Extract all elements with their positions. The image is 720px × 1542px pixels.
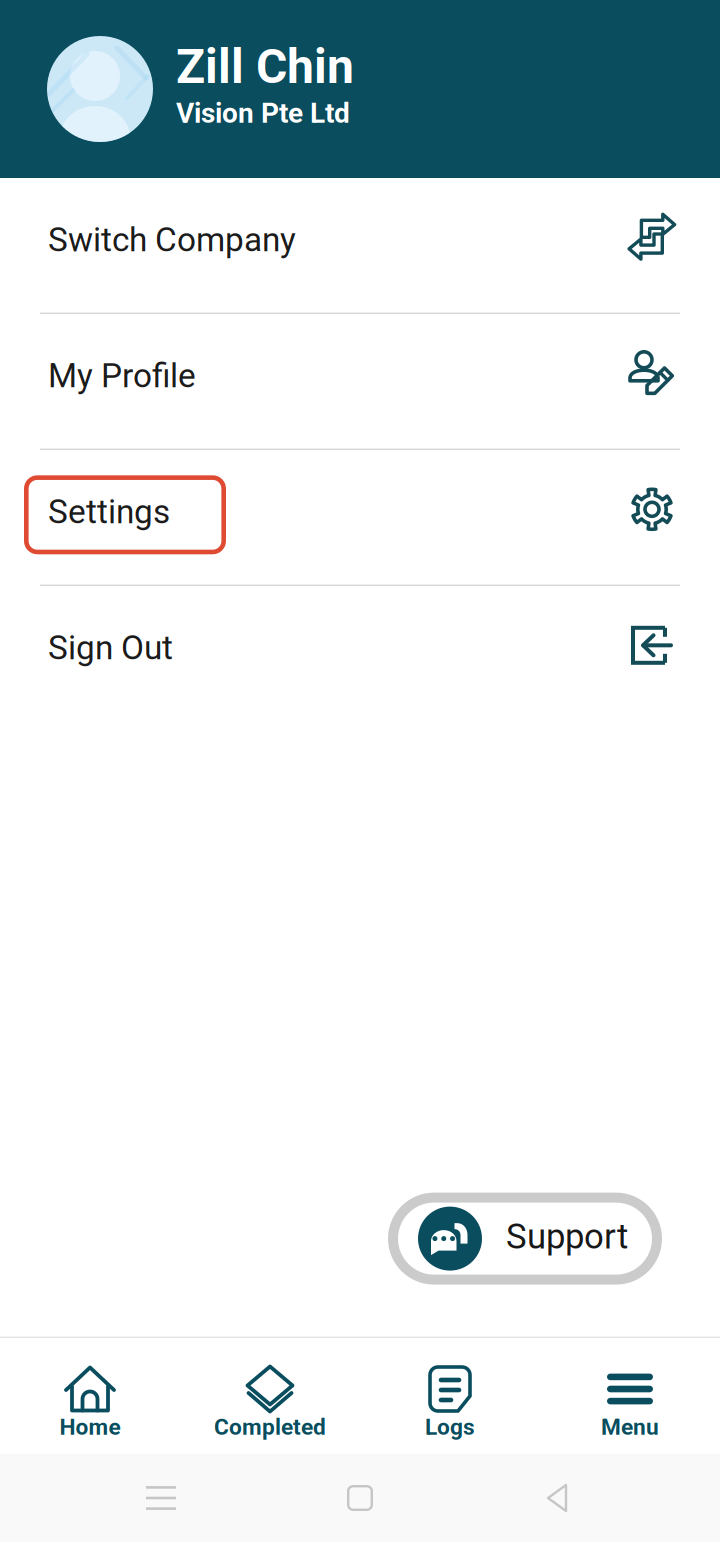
button[interactable]: Sign Out [0, 586, 720, 721]
button[interactable]: Recent apps [123, 1468, 199, 1528]
button[interactable]: Support [388, 1193, 662, 1285]
staticText: Support [506, 1216, 628, 1257]
button[interactable]: My Profile [0, 314, 720, 449]
staticText: Home [59, 1414, 120, 1440]
staticText: Switch Company [48, 220, 296, 259]
button[interactable]: Logs [360, 1338, 540, 1454]
button[interactable]: Completed [180, 1338, 360, 1454]
button[interactable]: Switch Company [0, 178, 720, 313]
button[interactable]: Home [322, 1468, 398, 1528]
staticText: Settings [48, 492, 170, 531]
staticText: Vision Pte Ltd [176, 97, 350, 129]
staticText: Logs [425, 1414, 475, 1440]
staticText: Completed [214, 1414, 326, 1440]
staticText: Sign Out [48, 628, 173, 667]
button[interactable]: Settings [0, 450, 720, 585]
button[interactable]: Back [521, 1468, 597, 1528]
button[interactable]: Menu [540, 1338, 720, 1454]
staticText: My Profile [48, 356, 196, 395]
staticText: Zill Chin [176, 38, 354, 95]
button[interactable]: Home [0, 1338, 180, 1454]
staticText: Menu [601, 1414, 659, 1440]
